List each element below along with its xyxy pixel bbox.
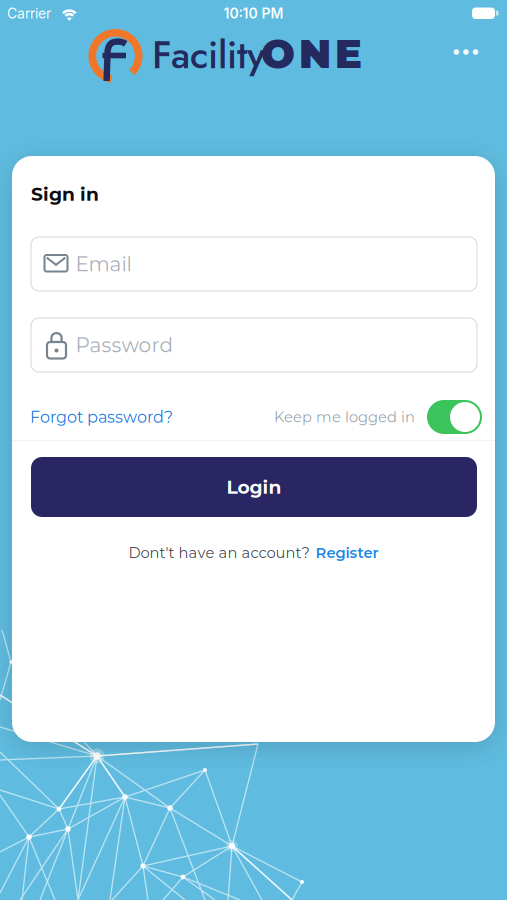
button[interactable]: Forgot password? (30, 407, 173, 426)
staticText: Dont't have an account? (128, 544, 309, 561)
staticText: Forgot password? (30, 407, 173, 426)
staticText: Register (315, 544, 378, 561)
staticText: Carrier (7, 5, 51, 22)
button[interactable]: Register (315, 544, 378, 561)
button[interactable]: Keep me logged in (427, 400, 482, 434)
staticText: Keep me logged in (274, 408, 415, 426)
staticText: 10:10 PM (223, 5, 283, 22)
button[interactable]: More options (446, 37, 486, 67)
staticText: Password (75, 333, 173, 357)
staticText: Login (226, 476, 281, 498)
staticText: Sign in (31, 183, 99, 205)
staticText: O N E (261, 30, 362, 77)
button[interactable]: Login (31, 457, 477, 517)
staticText: Facility (152, 27, 265, 82)
staticText: Email (75, 252, 131, 276)
